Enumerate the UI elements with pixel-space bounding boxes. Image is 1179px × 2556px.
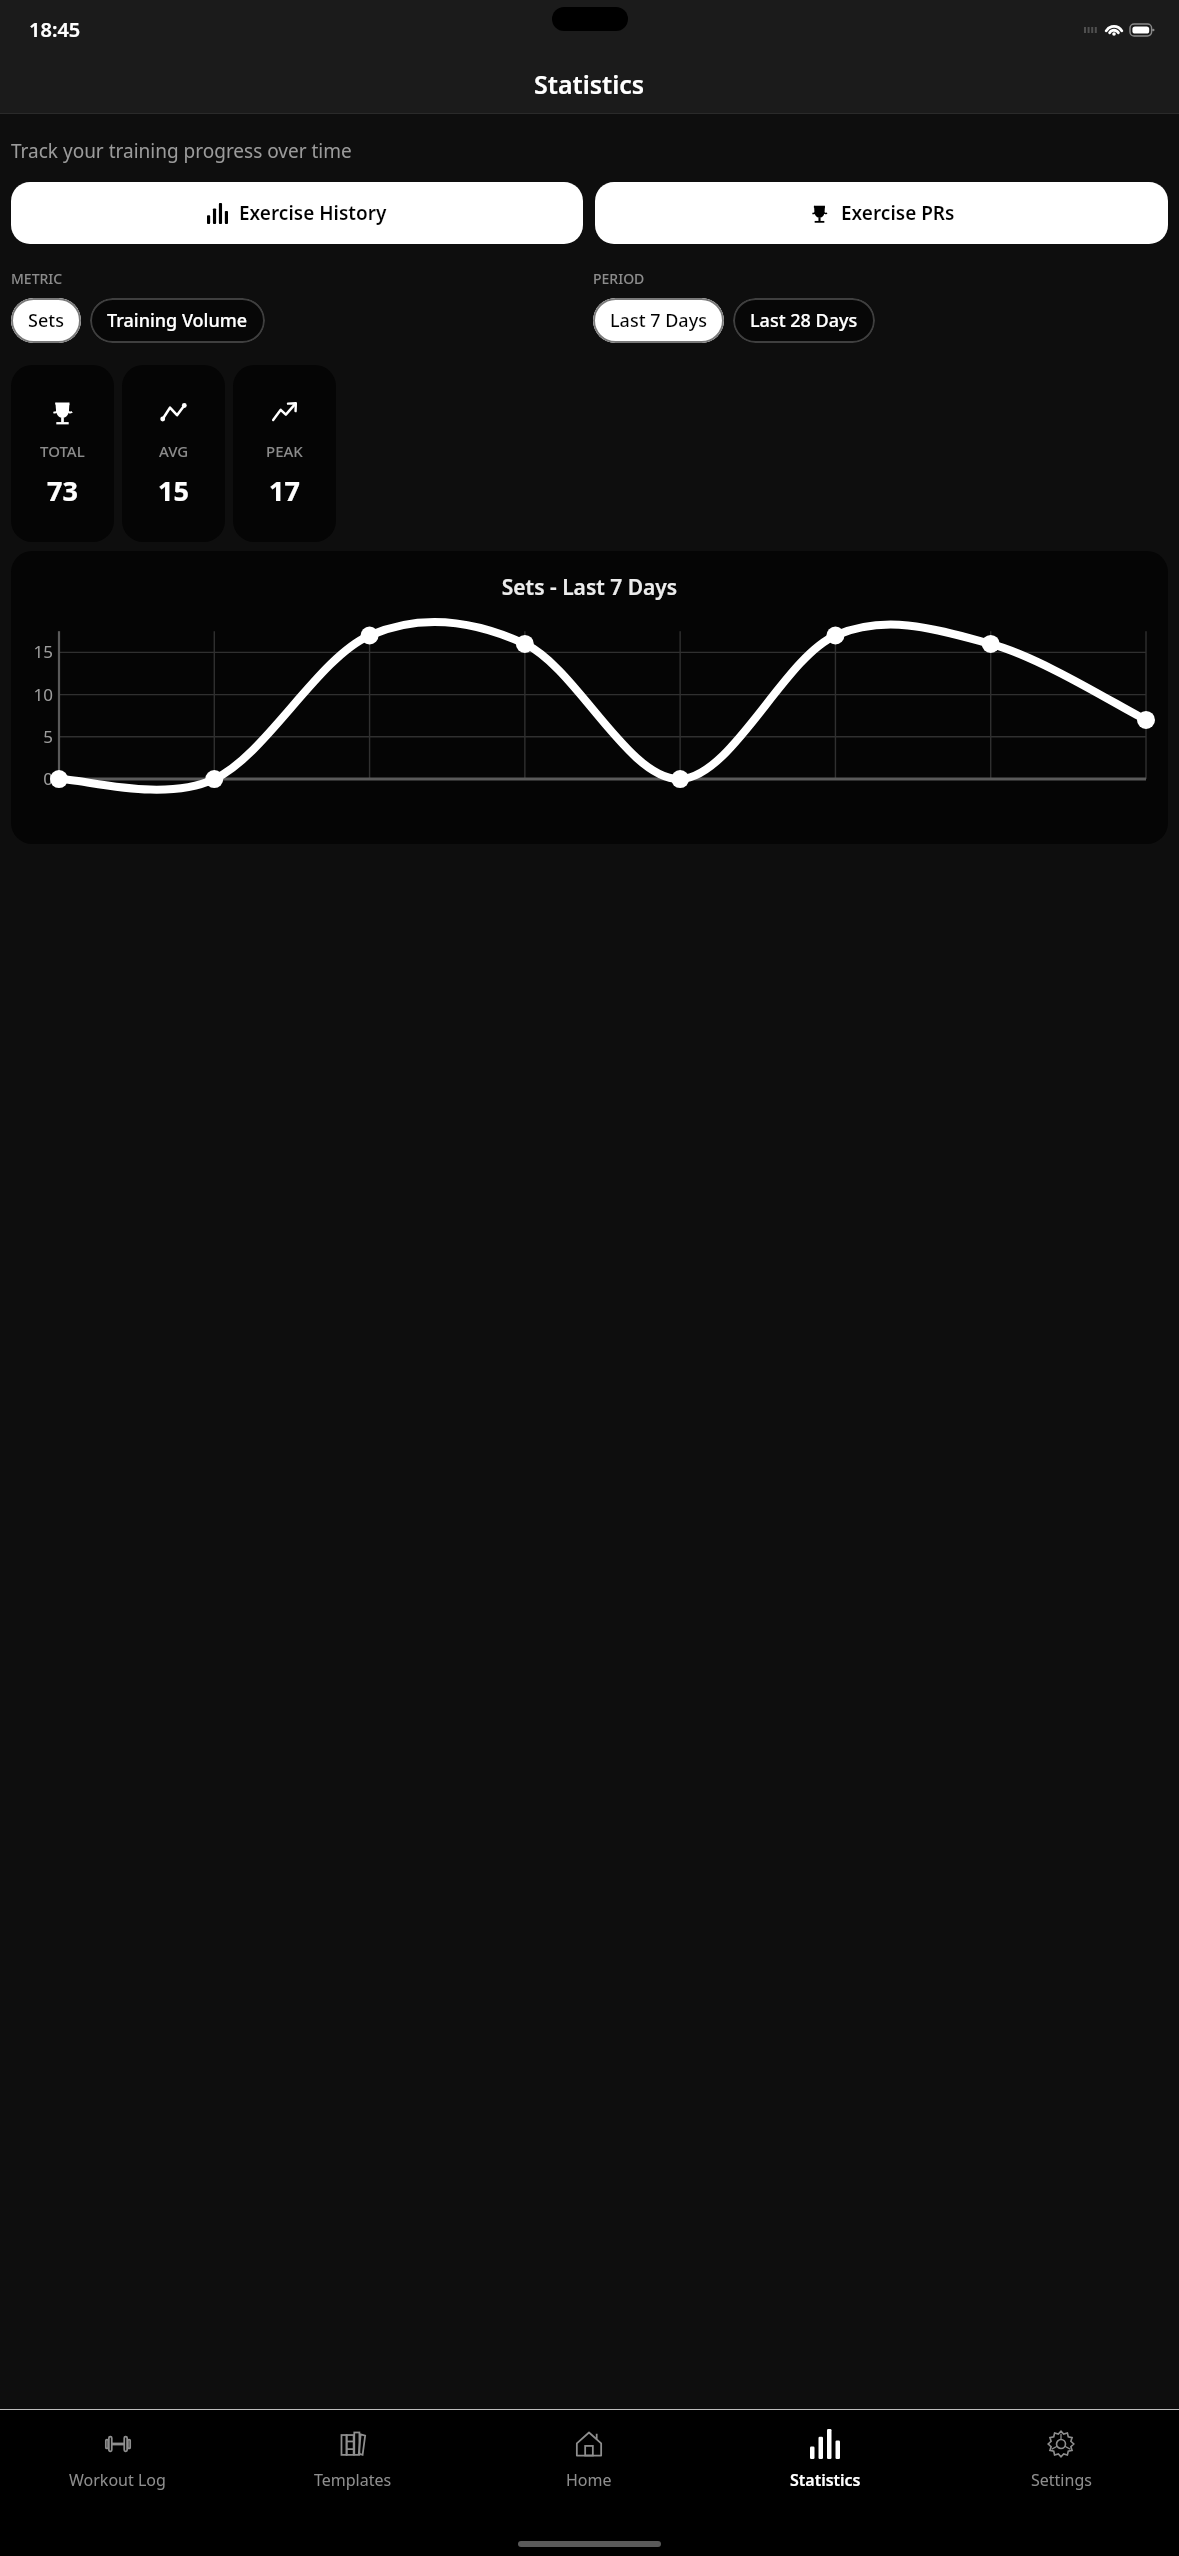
button[interactable]: Sets — [11, 298, 81, 343]
button[interactable]: Templates — [235, 2428, 471, 2491]
staticText: 73 — [47, 472, 78, 509]
staticText: PEAK — [266, 441, 303, 461]
button[interactable]: PEAK — [233, 365, 336, 542]
staticText: 17 — [269, 472, 300, 509]
staticText: Track your training progress over time — [11, 138, 352, 164]
staticText: Home — [566, 2469, 612, 2491]
button[interactable]: Last 28 Days — [733, 298, 875, 343]
button[interactable]: Home — [471, 2428, 707, 2491]
staticText: Templates — [314, 2469, 392, 2491]
button[interactable]: AVG — [122, 365, 225, 542]
staticText: Sets — [28, 308, 64, 333]
staticText: 15 — [23, 640, 53, 663]
staticText: METRIC — [11, 269, 63, 288]
button[interactable]: Settings — [943, 2428, 1179, 2491]
button[interactable]: Exercise History — [11, 182, 583, 244]
staticText: Statistics — [790, 2469, 861, 2491]
button[interactable]: Workout Log — [0, 2428, 235, 2491]
staticText: Statistics — [534, 67, 645, 101]
staticText: 18:45 — [29, 16, 81, 43]
staticText: 10 — [23, 683, 53, 706]
staticText: Sets - Last 7 Days — [11, 573, 1168, 602]
other: Workout Log — [102, 2428, 134, 2460]
staticText: 5 — [23, 725, 53, 748]
staticText: 0 — [23, 767, 53, 790]
staticText: Last 7 Days — [610, 308, 707, 333]
button[interactable]: Exercise PRs — [595, 182, 1168, 244]
staticText: 15 — [158, 472, 189, 509]
other: Templates — [337, 2428, 369, 2460]
other: Settings — [1045, 2428, 1077, 2460]
button[interactable]: Statistics — [707, 2428, 943, 2491]
staticText: Workout Log — [69, 2469, 166, 2491]
button[interactable]: TOTAL — [11, 365, 114, 542]
staticText: PERIOD — [593, 269, 645, 288]
staticText: Exercise PRs — [841, 200, 955, 226]
button[interactable]: Training Volume — [90, 298, 265, 343]
staticText: Training Volume — [107, 308, 248, 333]
staticText: Exercise History — [239, 200, 387, 226]
staticText: Last 28 Days — [750, 308, 858, 333]
button[interactable]: Last 7 Days — [593, 298, 724, 343]
staticText: AVG — [159, 441, 189, 461]
staticText: Settings — [1031, 2469, 1092, 2491]
other: Home — [573, 2428, 605, 2460]
staticText: TOTAL — [40, 441, 85, 461]
